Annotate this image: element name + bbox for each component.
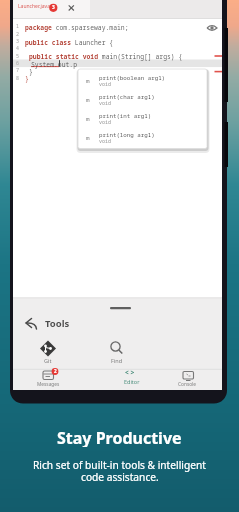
staticText: void <box>99 138 112 145</box>
staticText: public static void main(String[] args) { <box>29 52 183 61</box>
staticText: Find <box>111 357 123 364</box>
staticText: 2 <box>54 368 57 374</box>
staticText: Stay Productive <box>57 427 182 447</box>
staticText: 3 <box>52 4 55 11</box>
button[interactable]: m <box>79 129 206 148</box>
button[interactable] <box>22 315 38 331</box>
button[interactable]: m <box>79 91 206 110</box>
staticText: 4 <box>16 45 20 52</box>
staticText: < > <box>125 368 135 377</box>
button[interactable]: Console <box>176 369 201 389</box>
staticText: Messages <box>37 381 60 388</box>
staticText: m <box>86 134 90 142</box>
staticText: public class Launcher { <box>25 38 114 47</box>
staticText: 7 <box>16 67 20 74</box>
staticText: print(char arg1) <box>99 93 155 101</box>
staticText: print(int arg1) <box>99 112 152 120</box>
staticText: print(long arg1) <box>99 131 155 139</box>
staticText: Launcher.java <box>18 3 50 10</box>
button[interactable]: Find <box>105 339 127 366</box>
staticText: 8 <box>16 75 20 82</box>
staticText: Rich set of built-in tools & intelligent <box>33 458 206 472</box>
button[interactable]: < > <box>120 368 146 388</box>
button[interactable]: Git <box>38 339 58 366</box>
staticText: 1 <box>16 23 20 30</box>
staticText: m <box>86 77 90 85</box>
staticText: } <box>29 67 33 76</box>
staticText: code assistance. <box>81 470 159 484</box>
staticText: m <box>86 96 90 104</box>
button[interactable]: Launcher.java <box>13 0 90 18</box>
staticText: void <box>99 100 112 107</box>
staticText: 5 <box>16 53 20 60</box>
staticText: Tools <box>45 317 70 330</box>
staticText: System.out.p <box>31 60 78 69</box>
staticText: void <box>99 81 112 88</box>
button[interactable]: m <box>79 72 206 91</box>
staticText: 6 <box>16 60 20 67</box>
staticText: package com.sparseway.main; <box>25 23 129 32</box>
button[interactable]: Messages <box>33 369 63 389</box>
staticText: Git <box>44 357 52 364</box>
staticText: Editor <box>124 378 140 385</box>
staticText: print(boolean arg1) <box>99 74 166 82</box>
staticText: void <box>99 119 112 126</box>
staticText: m <box>86 115 90 123</box>
button[interactable]: m <box>79 110 206 129</box>
staticText: } <box>25 74 29 83</box>
staticText: 2 <box>16 31 20 38</box>
staticText: Console <box>178 381 197 388</box>
staticText: 3 <box>16 38 20 45</box>
